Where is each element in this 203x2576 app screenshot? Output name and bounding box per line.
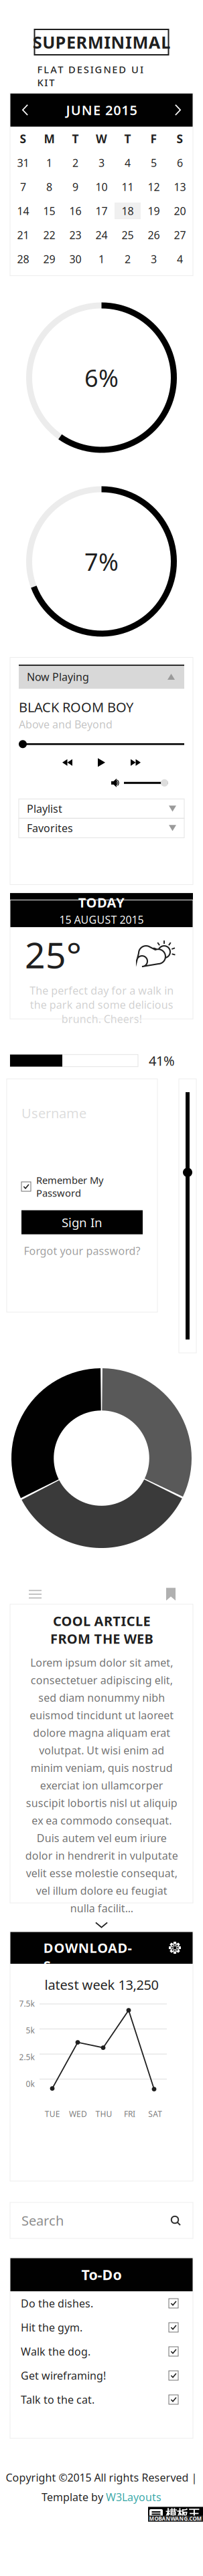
staticText: T <box>124 131 131 146</box>
staticText: COOL ARTICLE FROM THE WEB <box>50 1612 153 1647</box>
staticText: 5k <box>26 2025 35 2036</box>
staticText: 0k <box>26 2078 35 2089</box>
button[interactable]: Bookmark <box>163 1588 178 1601</box>
staticText: 6% <box>84 362 119 394</box>
button[interactable]: Search <box>170 2215 193 2226</box>
button[interactable]: W3Layouts <box>106 2490 161 2504</box>
staticText: 7 <box>20 180 26 194</box>
staticText: Copyright ©2015 All rights Reserved | <box>6 2470 197 2485</box>
staticText: WED <box>69 2109 87 2119</box>
staticText: 24 <box>95 228 108 242</box>
staticText: Hit the gym. <box>21 2320 82 2334</box>
staticText: 3 <box>98 156 105 170</box>
staticText: Get wireframing! <box>21 2368 106 2383</box>
staticText: DOWNLOADS <box>43 1939 136 1957</box>
staticText: M <box>44 131 55 146</box>
staticText: 5 <box>151 156 157 170</box>
staticText: 25 <box>122 228 134 242</box>
button[interactable]: Previous track <box>58 755 76 770</box>
button[interactable]: Get wireframing! <box>10 2363 193 2388</box>
staticText: TUE <box>45 2109 60 2119</box>
staticText: 7.5k <box>19 1998 35 2009</box>
staticText: Above and Beyond <box>19 717 113 731</box>
staticText: FLAT DESIGNED UI KIT <box>37 63 166 76</box>
staticText: FRI <box>124 2109 135 2119</box>
staticText: S <box>177 131 183 146</box>
staticText: BLACK ROOM BOY <box>19 698 133 716</box>
staticText: 26 <box>148 228 160 242</box>
staticText: Lorem ipsum dolor sit amet, consectetuer… <box>25 1655 178 1915</box>
staticText: 11 <box>122 180 134 194</box>
button[interactable]: Previous month <box>10 94 35 126</box>
staticText: W <box>96 131 107 146</box>
button[interactable]: Forgot your password? <box>24 1234 140 1261</box>
staticText: 2 <box>72 156 78 170</box>
staticText: SUPERMINIMAL <box>33 31 170 53</box>
staticText: 31 <box>17 156 29 170</box>
staticText: 18 <box>122 204 134 218</box>
staticText: 25° <box>25 931 82 978</box>
staticText: W3Layouts <box>106 2490 161 2504</box>
staticText: 1 <box>46 156 52 170</box>
button[interactable]: Menu <box>25 1586 46 1603</box>
button[interactable]: Next track <box>127 755 145 770</box>
button[interactable]: Play <box>94 754 109 771</box>
staticText: SAT <box>148 2109 162 2119</box>
staticText: 16 <box>69 204 81 218</box>
staticText: 41% <box>149 1052 175 1070</box>
staticText: 3 <box>151 252 157 266</box>
staticText: JUNE 2015 <box>66 101 137 119</box>
staticText: Do the dishes. <box>21 2296 93 2310</box>
staticText: THU <box>95 2109 112 2119</box>
button[interactable]: Playlist <box>19 799 184 818</box>
button[interactable]: Favorites <box>19 818 184 838</box>
button[interactable]: Walk the dog. <box>10 2339 193 2363</box>
staticText: Sign In <box>62 1214 103 1231</box>
staticText: 21 <box>17 228 29 242</box>
staticText: 4 <box>125 156 131 170</box>
staticText: 17 <box>95 204 108 218</box>
staticText: 模板王 <box>165 2507 200 2521</box>
staticText: 30 <box>69 252 81 266</box>
staticText: Forgot your password? <box>24 1244 140 1258</box>
staticText: F <box>150 131 157 146</box>
staticText: MOBANWANG.COM <box>149 2515 202 2522</box>
staticText: To-Do <box>81 2265 122 2284</box>
staticText: Walk the dog. <box>21 2344 90 2359</box>
button[interactable]: Do the dishes. <box>10 2291 193 2315</box>
staticText: latest week 13,250 <box>45 1976 158 1994</box>
button[interactable]: Settings <box>169 1942 193 1954</box>
staticText: 29 <box>43 252 55 266</box>
staticText: T <box>72 131 79 146</box>
staticText: TODAY <box>78 893 125 911</box>
staticText: S <box>20 131 26 146</box>
staticText: 28 <box>17 252 29 266</box>
staticText: 1 <box>98 252 105 266</box>
button[interactable]: Read more <box>88 1915 115 1935</box>
staticText: 2.5k <box>19 2052 35 2062</box>
button[interactable]: Sign In <box>21 1210 143 1234</box>
staticText: 12 <box>148 180 160 194</box>
staticText: 22 <box>43 228 55 242</box>
staticText: 4 <box>177 252 183 266</box>
staticText: 6 <box>177 156 183 170</box>
staticText: Playlist <box>27 802 62 816</box>
button[interactable]: Next month <box>168 94 193 126</box>
staticText: 15 <box>43 204 55 218</box>
staticText: 13 <box>174 180 186 194</box>
staticText: 23 <box>69 228 81 242</box>
button[interactable]: Remember My Password <box>21 1174 143 1200</box>
staticText: 9 <box>72 180 78 194</box>
staticText: Now Playing <box>27 670 89 684</box>
button[interactable]: Talk to the cat. <box>10 2388 193 2412</box>
staticText: 19 <box>148 204 160 218</box>
staticText: Template by <box>42 2490 103 2504</box>
button[interactable]: Hit the gym. <box>10 2315 193 2339</box>
staticText: Username <box>21 1104 86 1122</box>
staticText: 14 <box>17 204 29 218</box>
staticText: 7% <box>84 545 119 577</box>
staticText: 8 <box>46 180 52 194</box>
staticText: 27 <box>174 228 186 242</box>
staticText: Favorites <box>27 821 73 835</box>
staticText: 10 <box>95 180 108 194</box>
